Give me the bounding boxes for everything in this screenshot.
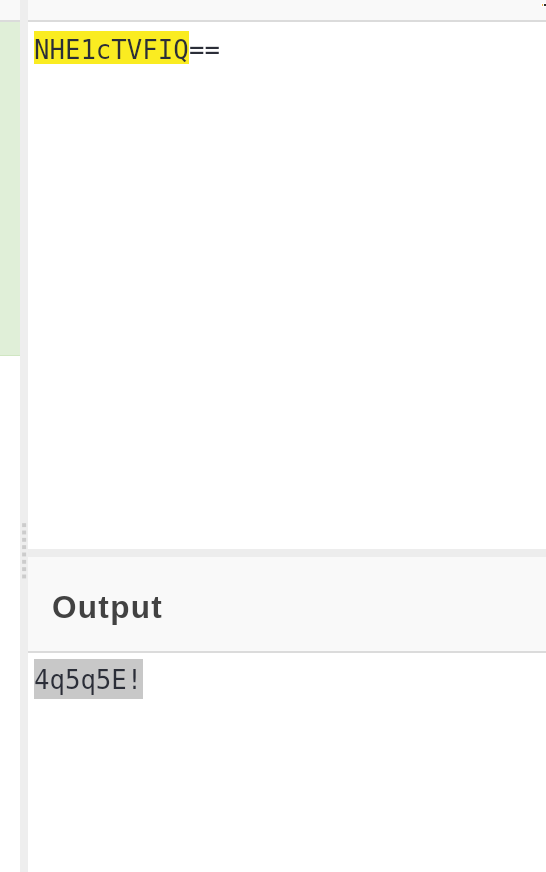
staticText: 4q5q5E! — [34, 665, 143, 695]
staticText: NHE1cTVFIQ — [34, 35, 189, 64]
button[interactable]: Resize editor pane — [20, 0, 28, 872]
button[interactable]: NHE1cTVFIQ — [34, 31, 220, 64]
button[interactable]: Output — [28, 557, 546, 651]
button[interactable]: Toolbar action — [541, 3, 546, 7]
button[interactable]: 4q5q5E! — [34, 659, 143, 699]
staticText: Output — [52, 589, 164, 624]
staticText: == — [189, 35, 220, 64]
